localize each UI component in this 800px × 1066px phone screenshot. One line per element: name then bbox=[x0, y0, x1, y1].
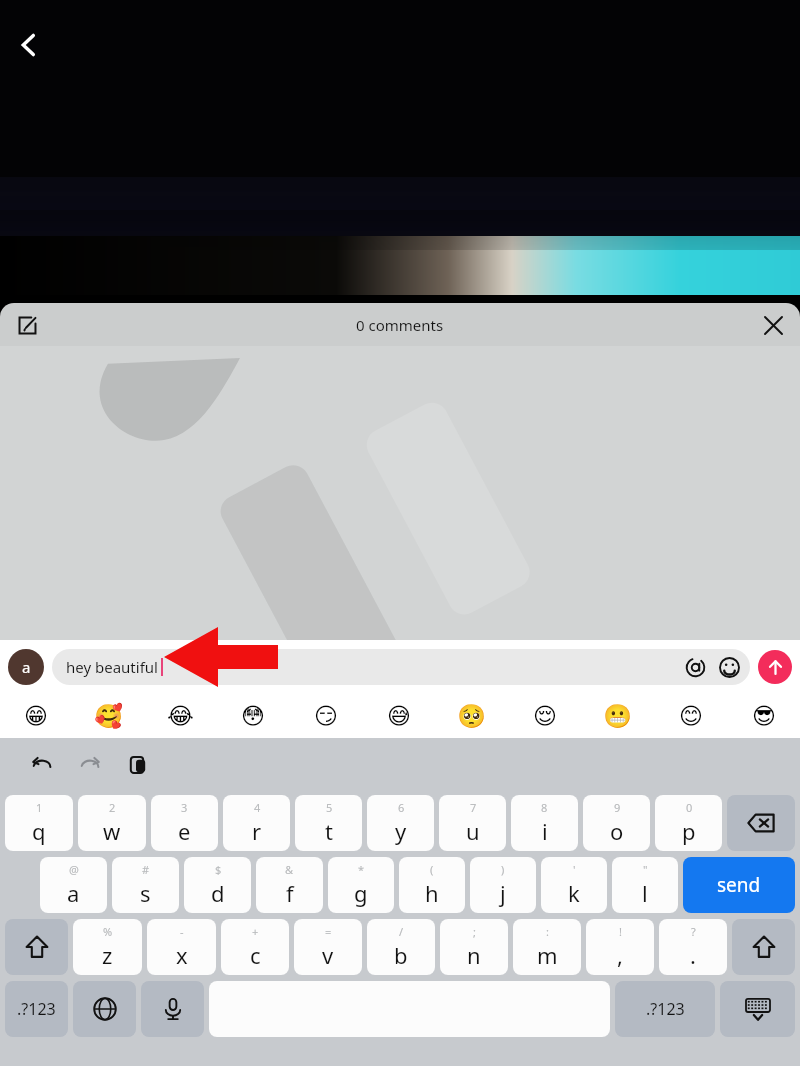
button[interactable]: Clipboard bbox=[116, 743, 160, 787]
button[interactable]: Send bbox=[758, 650, 792, 684]
button[interactable]: Backspace bbox=[727, 795, 795, 851]
staticText: / bbox=[399, 924, 404, 939]
staticText: ' bbox=[573, 862, 576, 877]
button[interactable]: 7 bbox=[439, 795, 506, 851]
staticText: 7 bbox=[470, 800, 477, 815]
button[interactable]: - bbox=[147, 919, 216, 975]
staticText: t bbox=[325, 816, 333, 846]
staticText: ! bbox=[619, 924, 622, 939]
button[interactable]: Back bbox=[6, 22, 52, 68]
staticText: = bbox=[325, 924, 332, 939]
button[interactable]: % bbox=[73, 919, 142, 975]
button[interactable]: ? bbox=[659, 919, 727, 975]
button[interactable]: : bbox=[513, 919, 581, 975]
button[interactable]: ! bbox=[586, 919, 654, 975]
staticText: 😎 bbox=[752, 703, 776, 730]
button[interactable]: Compose comment bbox=[8, 306, 46, 344]
staticText: ) bbox=[501, 862, 505, 877]
staticText: - bbox=[180, 924, 184, 939]
button[interactable]: 😏 bbox=[289, 694, 362, 738]
staticText: q bbox=[32, 816, 46, 846]
staticText: y bbox=[395, 816, 407, 846]
button[interactable]: hey beautiful bbox=[52, 649, 750, 685]
staticText: .?123 bbox=[17, 998, 56, 1020]
button[interactable]: .?123 bbox=[615, 981, 715, 1037]
button[interactable]: ( bbox=[399, 857, 465, 913]
button[interactable]: ) bbox=[470, 857, 536, 913]
staticText: 😏 bbox=[314, 703, 338, 730]
button[interactable]: @ bbox=[40, 857, 107, 913]
staticText: 0 bbox=[686, 800, 693, 815]
staticText: 😌 bbox=[533, 703, 557, 730]
button[interactable]: 1 bbox=[5, 795, 73, 851]
button[interactable]: 5 bbox=[295, 795, 362, 851]
button[interactable]: 😌 bbox=[508, 694, 581, 738]
staticText: * bbox=[358, 862, 365, 877]
button[interactable]: & bbox=[256, 857, 323, 913]
button[interactable]: 2 bbox=[78, 795, 146, 851]
staticText: a bbox=[67, 878, 80, 908]
button[interactable]: Close bbox=[754, 306, 792, 344]
button[interactable]: = bbox=[294, 919, 362, 975]
button[interactable]: 😅 bbox=[362, 694, 435, 738]
button[interactable]: # bbox=[112, 857, 179, 913]
button[interactable]: 🥰 bbox=[72, 694, 144, 738]
button[interactable]: * bbox=[328, 857, 394, 913]
staticText: 😂 bbox=[167, 703, 194, 730]
button[interactable]: Shift bbox=[732, 919, 795, 975]
button[interactable]: ; bbox=[440, 919, 508, 975]
staticText: send bbox=[717, 872, 761, 898]
button[interactable]: 6 bbox=[367, 795, 434, 851]
button[interactable]: Your profile bbox=[8, 649, 44, 685]
staticText: % bbox=[103, 924, 113, 939]
button[interactable]: 0 bbox=[655, 795, 722, 851]
button[interactable]: 😳 bbox=[216, 694, 289, 738]
button[interactable]: Emoji bbox=[712, 650, 746, 684]
button[interactable]: Redo bbox=[68, 743, 112, 787]
staticText: e bbox=[178, 816, 191, 846]
button[interactable]: Mention bbox=[678, 650, 712, 684]
staticText: p bbox=[682, 816, 696, 846]
staticText: c bbox=[250, 940, 261, 970]
button[interactable]: 4 bbox=[223, 795, 290, 851]
staticText: 🥰 bbox=[94, 703, 123, 730]
staticText: s bbox=[140, 878, 151, 908]
button[interactable]: 😁 bbox=[0, 694, 72, 738]
staticText: o bbox=[610, 816, 624, 846]
staticText: j bbox=[500, 878, 506, 908]
button[interactable]: ' bbox=[541, 857, 607, 913]
staticText: 6 bbox=[398, 800, 405, 815]
staticText: u bbox=[466, 816, 480, 846]
button[interactable]: 😂 bbox=[144, 694, 216, 738]
staticText: 😊 bbox=[679, 703, 703, 730]
staticText: . bbox=[690, 940, 696, 970]
button[interactable]: Shift bbox=[5, 919, 68, 975]
staticText: @ bbox=[69, 862, 79, 877]
button[interactable]: $ bbox=[184, 857, 251, 913]
button[interactable]: Hide keyboard bbox=[720, 981, 795, 1037]
button[interactable]: " bbox=[612, 857, 678, 913]
staticText: k bbox=[568, 878, 580, 908]
button[interactable]: Voice input bbox=[141, 981, 204, 1037]
staticText: n bbox=[467, 940, 481, 970]
button[interactable]: .?123 bbox=[5, 981, 68, 1037]
button[interactable]: 😊 bbox=[654, 694, 727, 738]
button[interactable]: 😎 bbox=[727, 694, 800, 738]
staticText: + bbox=[252, 924, 259, 939]
staticText: 8 bbox=[541, 800, 548, 815]
staticText: d bbox=[211, 878, 225, 908]
button[interactable]: Undo bbox=[20, 743, 64, 787]
staticText: 🥺 bbox=[457, 703, 486, 730]
button[interactable]: 9 bbox=[583, 795, 650, 851]
button[interactable]: 8 bbox=[511, 795, 578, 851]
staticText: h bbox=[425, 878, 439, 908]
button[interactable]: + bbox=[221, 919, 289, 975]
button[interactable]: Change language bbox=[73, 981, 136, 1037]
button[interactable]: 😬 bbox=[581, 694, 654, 738]
button[interactable]: 🥺 bbox=[435, 694, 508, 738]
button[interactable]: send bbox=[683, 857, 795, 913]
staticText: $ bbox=[215, 862, 222, 877]
button[interactable]: 3 bbox=[151, 795, 218, 851]
button[interactable]: / bbox=[367, 919, 435, 975]
